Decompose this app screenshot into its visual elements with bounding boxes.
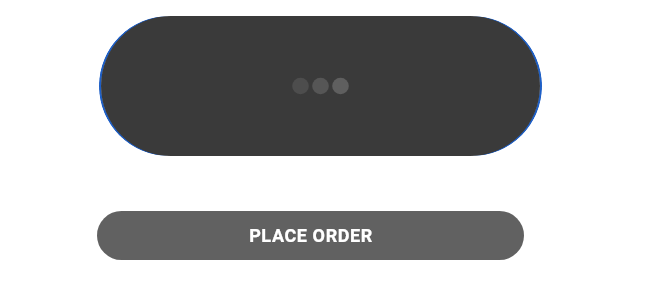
staticText: PLACE ORDER: [249, 225, 373, 246]
button[interactable]: Product preview, loading: [99, 16, 542, 156]
button[interactable]: PLACE ORDER: [97, 211, 524, 260]
